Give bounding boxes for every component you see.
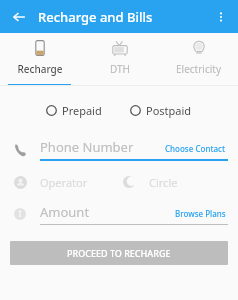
- button[interactable]: Choose Contact: [163, 141, 228, 156]
- staticText: Prepaid: [62, 103, 102, 118]
- button[interactable]: Electricity: [159, 33, 238, 86]
- button[interactable]: More options: [209, 5, 233, 29]
- button[interactable]: PROCEED TO RECHARGE: [10, 241, 228, 265]
- staticText: DTH: [110, 62, 130, 76]
- button[interactable]: DTH: [80, 33, 159, 86]
- staticText: Circle: [149, 175, 178, 190]
- staticText: Recharge: [17, 62, 63, 76]
- staticText: Recharge and Bills: [38, 8, 153, 26]
- button[interactable]: Phone Number: [10, 138, 228, 161]
- staticText: PROCEED TO RECHARGE: [67, 247, 171, 259]
- staticText: Browse Plans: [175, 208, 226, 219]
- button[interactable]: Operator: [10, 172, 119, 192]
- staticText: Choose Contact: [165, 143, 226, 154]
- staticText: Electricity: [176, 62, 221, 76]
- staticText: Postpaid: [146, 103, 192, 118]
- staticText: Phone Number: [40, 138, 163, 156]
- button[interactable]: Back: [6, 4, 32, 30]
- button[interactable]: Browse Plans: [173, 206, 228, 221]
- button[interactable]: Postpaid: [128, 100, 194, 121]
- button[interactable]: Recharge: [0, 33, 80, 86]
- staticText: Operator: [40, 175, 88, 190]
- button[interactable]: Circle: [119, 172, 228, 192]
- staticText: Amount: [40, 203, 173, 221]
- button[interactable]: Amount: [10, 203, 228, 225]
- button[interactable]: Prepaid: [44, 100, 104, 121]
